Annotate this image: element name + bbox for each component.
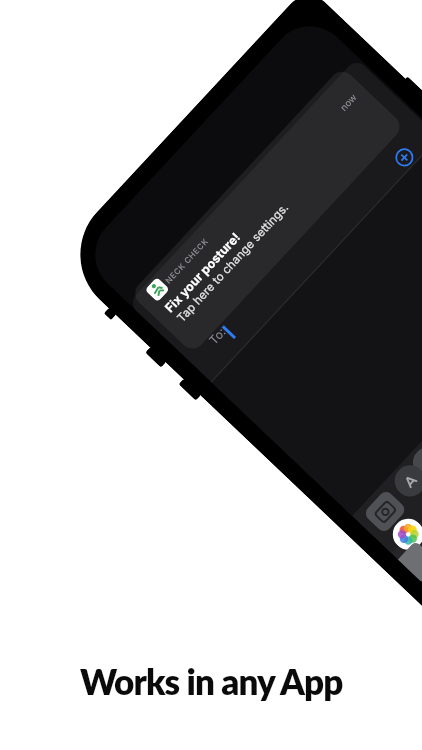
button[interactable] xyxy=(397,540,422,582)
staticText: Tap here to change settings. xyxy=(171,200,294,325)
staticText: Works in any App xyxy=(80,660,343,702)
button[interactable]: NECK CHECK xyxy=(124,65,410,355)
button[interactable] xyxy=(388,458,422,503)
button[interactable] xyxy=(362,488,408,535)
staticText: NECK CHECK xyxy=(162,235,212,286)
staticText: now xyxy=(338,91,359,113)
button[interactable] xyxy=(386,512,422,557)
staticText: Fix your posture! xyxy=(160,229,245,316)
staticText: To: xyxy=(205,324,229,348)
button[interactable] xyxy=(391,144,417,171)
